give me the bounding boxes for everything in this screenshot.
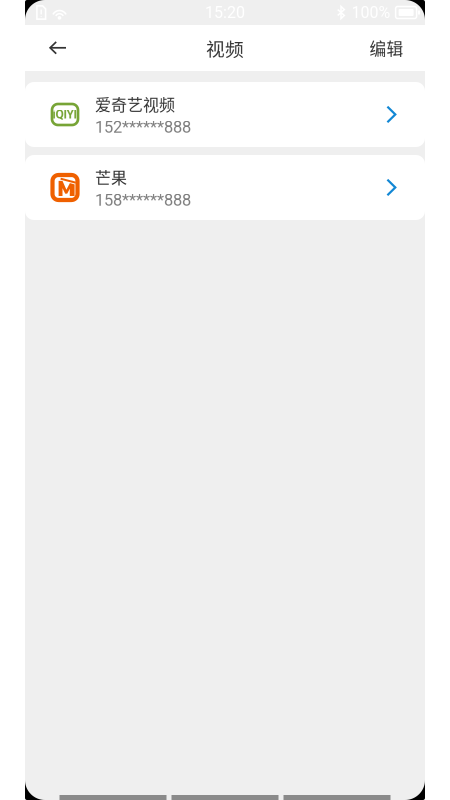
staticText: iQIYI	[52, 107, 77, 122]
button[interactable]: 芒果	[25, 155, 425, 220]
staticText: 芒果	[95, 165, 127, 188]
staticText: 15:20	[205, 3, 245, 22]
staticText: 视频	[206, 34, 244, 61]
staticText: 152******888	[95, 117, 191, 137]
staticText: 158******888	[95, 190, 191, 210]
staticText: 编辑	[369, 36, 403, 60]
staticText: 爱奇艺视频	[95, 92, 175, 115]
button[interactable]: iQIYI	[25, 82, 425, 147]
button[interactable]: Back	[25, 25, 91, 71]
staticText: 100%	[352, 3, 391, 22]
button[interactable]: 编辑	[348, 25, 425, 71]
